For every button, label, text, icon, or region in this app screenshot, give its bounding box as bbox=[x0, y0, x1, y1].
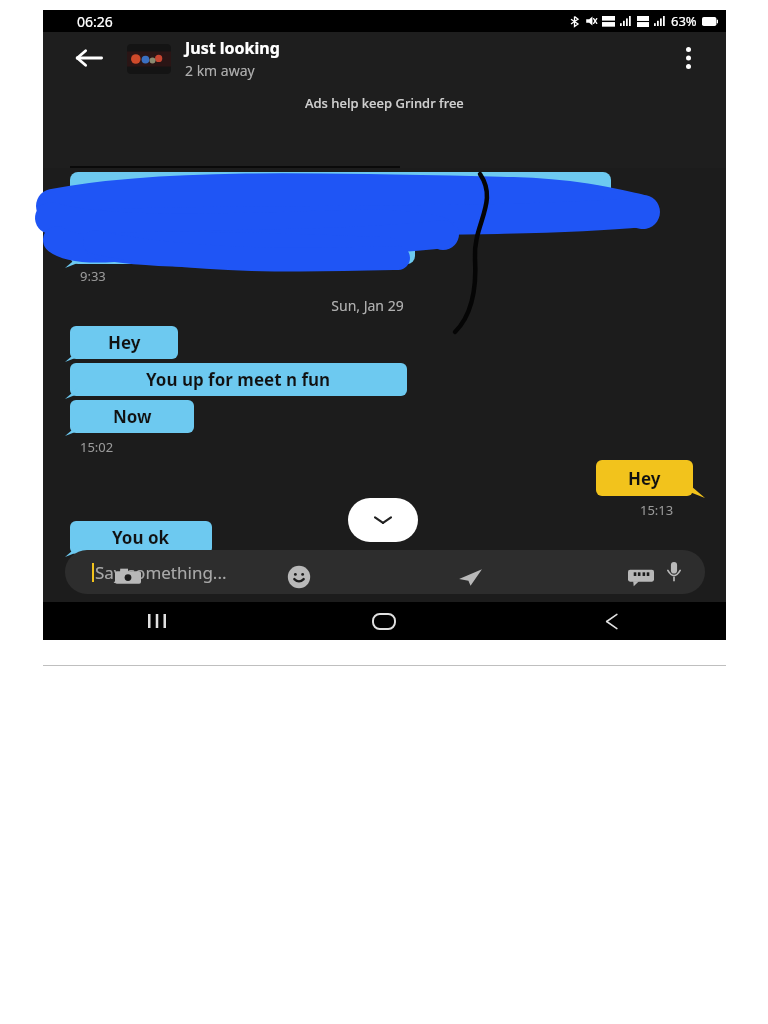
button[interactable]: Emoji bbox=[213, 554, 384, 600]
button[interactable]: More options bbox=[668, 38, 708, 78]
button[interactable]: Hey bbox=[596, 460, 693, 496]
button[interactable]: You up for meet n fun bbox=[70, 363, 407, 396]
staticText: You up for meet n fun bbox=[146, 368, 331, 391]
button[interactable] bbox=[70, 227, 415, 264]
button[interactable]: Saved phrases bbox=[555, 554, 726, 600]
button[interactable]: Home bbox=[270, 602, 498, 640]
button[interactable]: Say something... bbox=[65, 550, 705, 594]
staticText: Sun, Jan 29 bbox=[331, 296, 404, 315]
button[interactable]: Recents bbox=[43, 602, 270, 640]
staticText: 9:33 bbox=[80, 267, 106, 285]
button[interactable]: Hey bbox=[70, 326, 178, 359]
button[interactable]: Back bbox=[65, 34, 113, 82]
button[interactable]: Scroll to bottom bbox=[348, 498, 418, 542]
staticText: Just looking bbox=[185, 37, 280, 59]
button[interactable]: Just looking bbox=[127, 37, 668, 80]
button[interactable]: Voice input bbox=[657, 555, 691, 589]
staticText: 63% bbox=[671, 12, 697, 30]
staticText: 15:02 bbox=[80, 438, 114, 456]
button[interactable] bbox=[70, 172, 611, 222]
button[interactable]: You ok bbox=[70, 521, 212, 554]
button[interactable]: Back bbox=[498, 602, 726, 640]
staticText: Now bbox=[113, 405, 152, 428]
staticText: Say something... bbox=[95, 561, 227, 584]
staticText: Ads help keep Grindr free bbox=[305, 94, 464, 112]
staticText: Hey bbox=[108, 331, 141, 354]
button[interactable]: Now bbox=[70, 400, 194, 433]
staticText: Hey bbox=[628, 467, 661, 490]
staticText: 2 km away bbox=[185, 61, 255, 80]
staticText: 06:26 bbox=[77, 12, 113, 31]
button[interactable]: Camera bbox=[43, 554, 213, 600]
staticText: You ok bbox=[112, 526, 170, 549]
staticText: 15:13 bbox=[640, 501, 674, 519]
button[interactable]: Send location bbox=[384, 554, 555, 600]
